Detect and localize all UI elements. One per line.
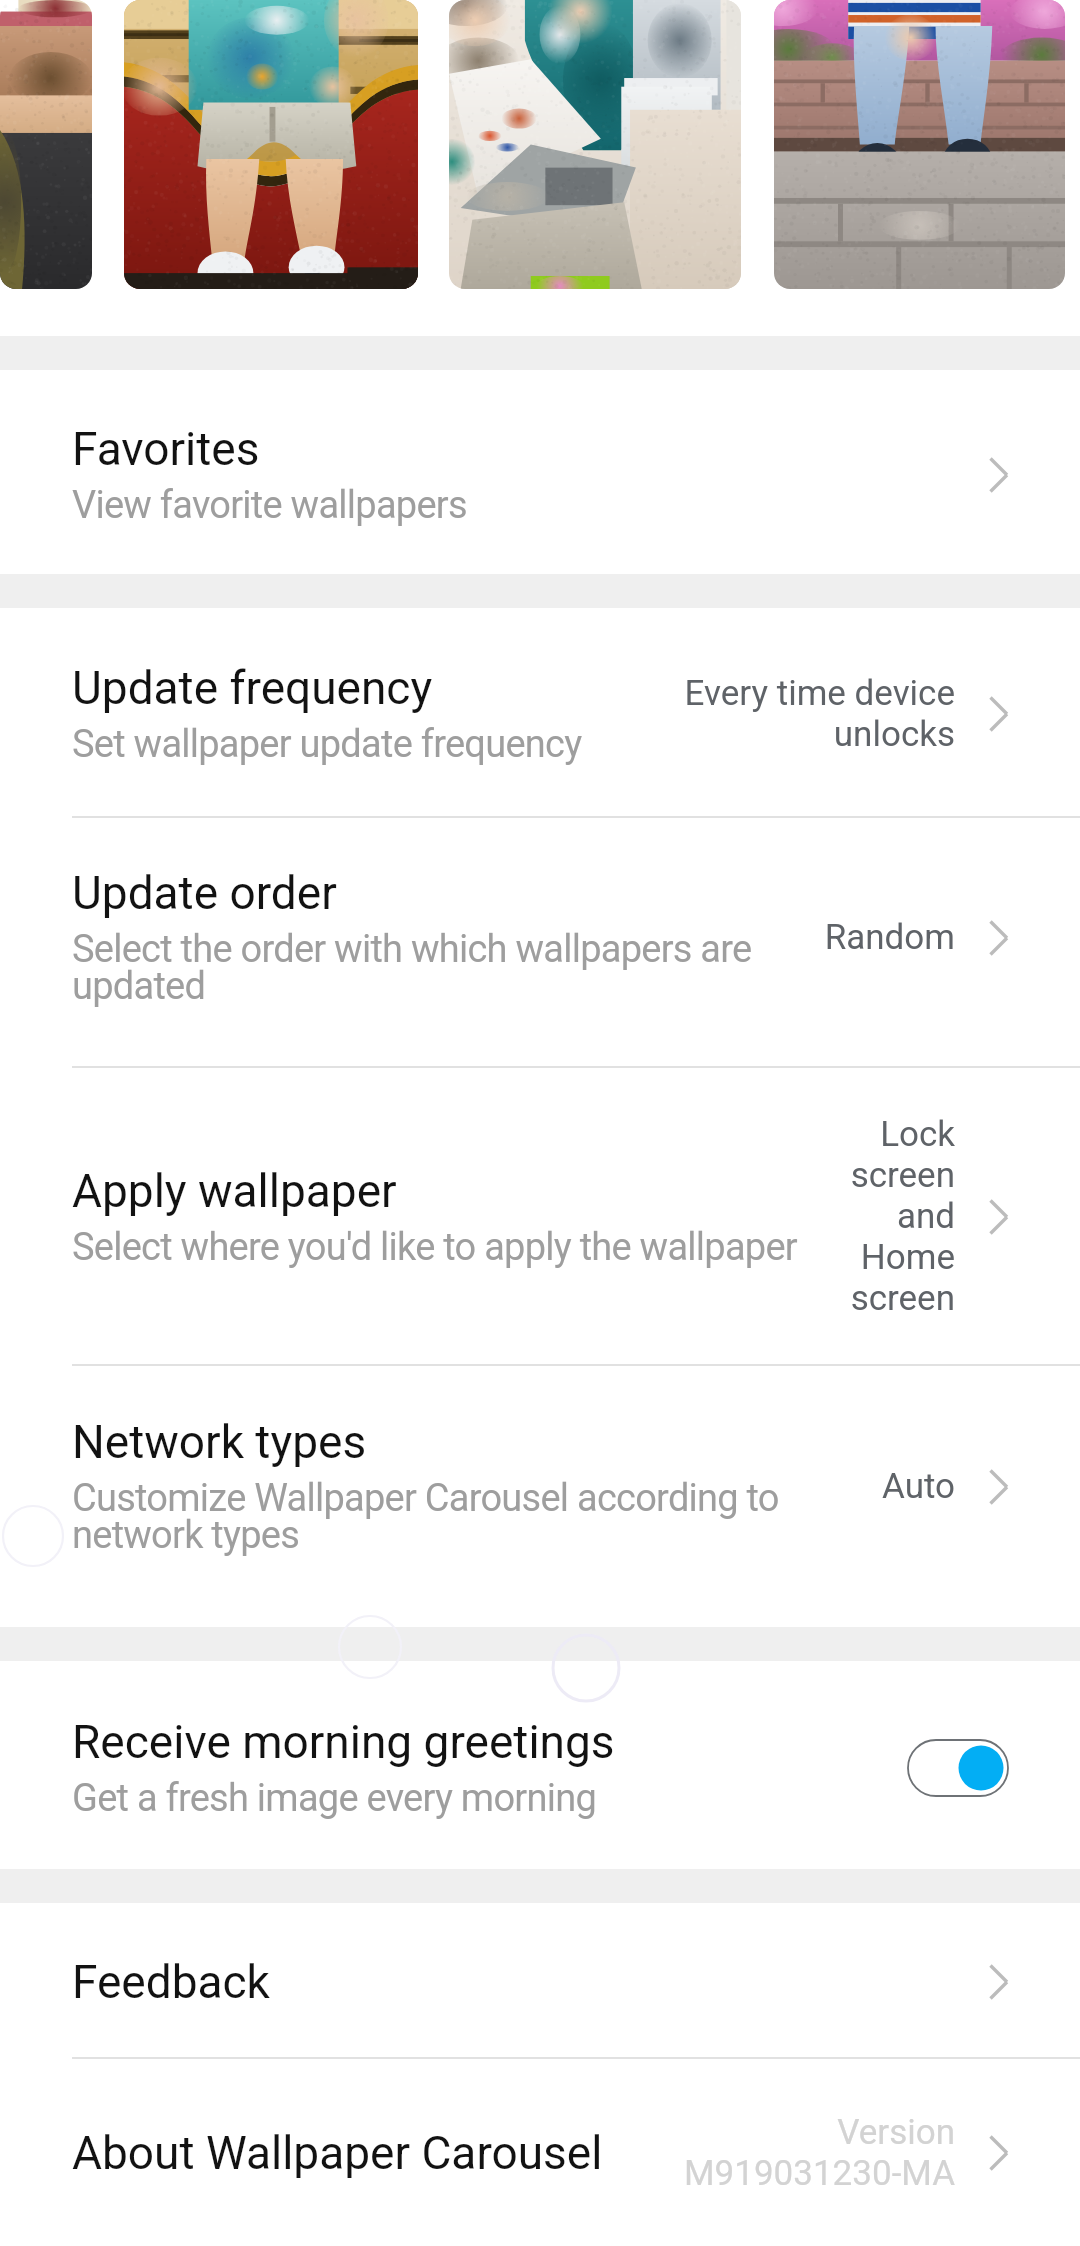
staticText: Random (755, 917, 955, 958)
button[interactable]: Wallpaper photo 2 (124, 0, 418, 289)
staticText: Get a fresh image every morning (72, 1776, 597, 1821)
staticText: Every time device unlocks (665, 673, 955, 755)
button[interactable]: Update order (0, 818, 1080, 1066)
staticText: Select the order with which wallpapers a… (72, 927, 755, 1009)
staticText: View favorite wallpapers (72, 483, 467, 528)
staticText: About Wallpaper Carousel (72, 2126, 603, 2180)
button[interactable]: Receive morning greetings (908, 1740, 1008, 1796)
button[interactable]: Network types (0, 1366, 1080, 1627)
staticText: Receive morning greetings (72, 1715, 615, 1769)
staticText: Apply wallpaper (72, 1164, 397, 1218)
staticText: Version M919031230-MA (665, 2112, 955, 2193)
button[interactable]: Apply wallpaper (0, 1068, 1080, 1364)
staticText: Feedback (72, 1955, 270, 2009)
button[interactable]: About Wallpaper Carousel (0, 2059, 1080, 2246)
button[interactable]: Feedback (0, 1903, 1080, 2057)
staticText: Customize Wallpaper Carousel according t… (72, 1476, 792, 1558)
staticText: Update order (72, 866, 337, 920)
staticText: Set wallpaper update frequency (72, 722, 582, 767)
staticText: Update frequency (72, 661, 433, 715)
button[interactable]: Wallpaper photo 1 (0, 0, 92, 289)
staticText: Network types (72, 1415, 367, 1469)
staticText: Lock screen and Home screen (840, 1114, 955, 1319)
staticText: Auto (825, 1466, 955, 1507)
staticText: Select where you'd like to apply the wal… (72, 1225, 797, 1270)
button[interactable]: Wallpaper photo 4 (774, 0, 1065, 289)
staticText: Favorites (72, 422, 260, 476)
button[interactable]: Update frequency (0, 608, 1080, 816)
button[interactable]: Receive morning greetings (0, 1661, 1080, 1869)
button[interactable]: Wallpaper photo 3 (449, 0, 741, 289)
button[interactable]: Favorites (0, 370, 1080, 574)
